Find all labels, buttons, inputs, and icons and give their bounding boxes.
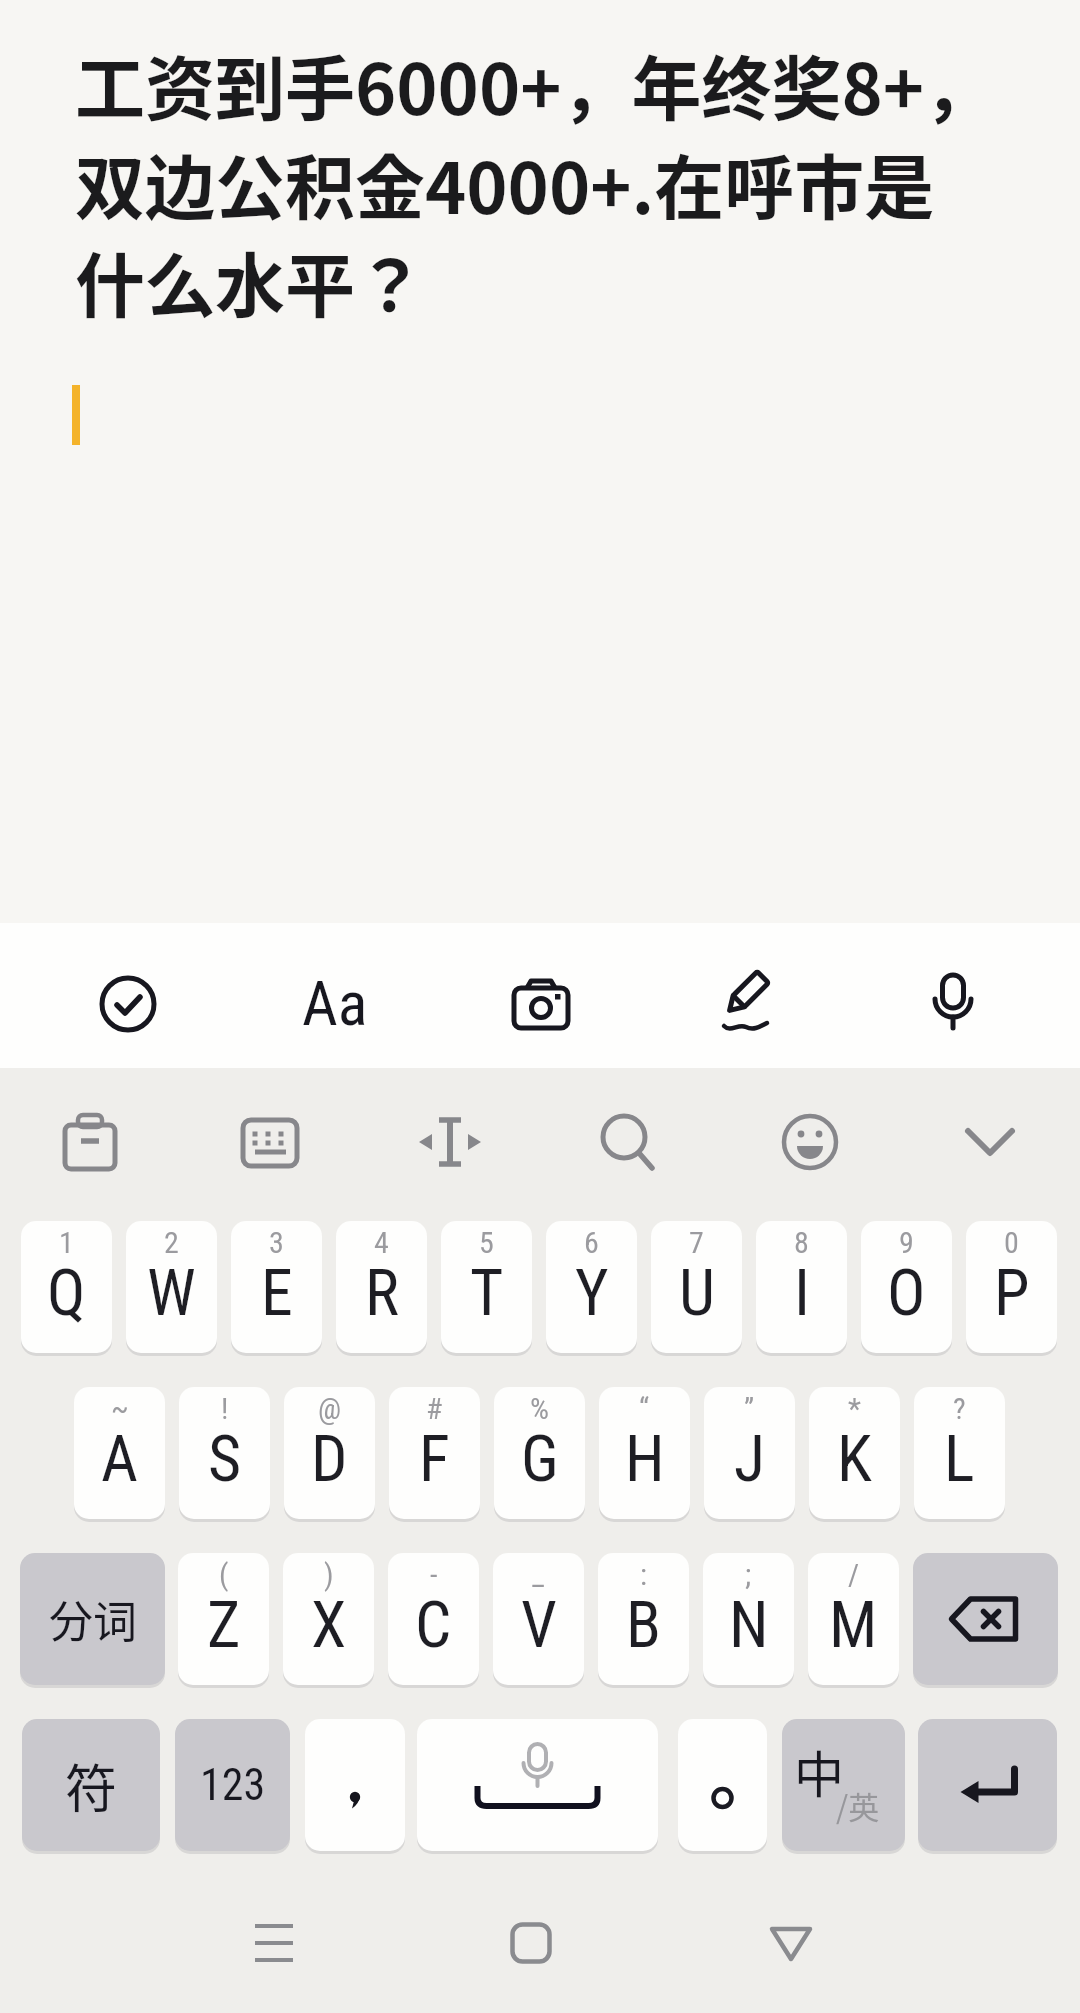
button[interactable]	[755, 1907, 827, 1979]
button[interactable]: 8	[756, 1221, 847, 1353]
staticText: 符	[65, 1748, 118, 1823]
button[interactable]: 4	[336, 1221, 427, 1353]
staticText: 1	[59, 1225, 74, 1260]
staticText: O	[887, 1256, 926, 1331]
button[interactable]: :	[598, 1553, 689, 1685]
staticText: Z	[207, 1588, 241, 1663]
staticText: V	[521, 1588, 557, 1663]
staticText: X	[311, 1588, 347, 1663]
staticText: ”	[744, 1391, 755, 1426]
staticText: “	[639, 1391, 650, 1426]
staticText: K	[837, 1422, 872, 1497]
button[interactable]: 符	[22, 1719, 160, 1851]
button[interactable]: ~	[74, 1387, 165, 1519]
button[interactable]: 3	[231, 1221, 322, 1353]
staticText: C	[415, 1588, 452, 1663]
staticText: /英	[836, 1783, 880, 1828]
staticText: 中	[794, 1735, 844, 1807]
staticText: 0	[1004, 1225, 1019, 1260]
staticText: #	[426, 1391, 443, 1426]
staticText: Aa	[302, 967, 368, 1040]
button[interactable]: %	[494, 1387, 585, 1519]
button[interactable]	[918, 1719, 1057, 1851]
staticText: 8	[794, 1225, 809, 1260]
staticText: S	[208, 1422, 242, 1497]
button[interactable]: 5	[441, 1221, 532, 1353]
staticText: %	[530, 1391, 549, 1426]
button[interactable]: 2	[126, 1221, 217, 1353]
button[interactable]	[644, 923, 850, 1068]
staticText: B	[626, 1588, 661, 1663]
staticText: N	[729, 1588, 769, 1663]
button[interactable]: *	[809, 1387, 900, 1519]
button[interactable]: ”	[704, 1387, 795, 1519]
staticText: Q	[47, 1256, 86, 1331]
staticText: /	[848, 1557, 860, 1592]
button[interactable]: ?	[914, 1387, 1005, 1519]
button[interactable]: 分词	[20, 1553, 165, 1685]
staticText: 4	[374, 1225, 389, 1260]
button[interactable]	[305, 1719, 405, 1851]
staticText: 3	[269, 1225, 284, 1260]
staticText: !	[221, 1391, 229, 1426]
button[interactable]	[774, 1106, 846, 1178]
button[interactable]	[678, 1719, 767, 1851]
staticText: I	[794, 1256, 810, 1331]
staticText: J	[734, 1422, 765, 1497]
button[interactable]: 1	[21, 1221, 112, 1353]
staticText: U	[679, 1256, 715, 1331]
staticText: Y	[575, 1256, 609, 1331]
button[interactable]: /	[808, 1553, 899, 1685]
button[interactable]: _	[493, 1553, 584, 1685]
button[interactable]: 123	[175, 1719, 290, 1851]
button[interactable]: (	[178, 1553, 269, 1685]
button[interactable]	[414, 1106, 486, 1178]
button[interactable]	[54, 1106, 126, 1178]
staticText: :	[640, 1557, 648, 1592]
button[interactable]: )	[283, 1553, 374, 1685]
staticText: *	[848, 1391, 861, 1426]
staticText: ;	[745, 1557, 752, 1592]
staticText: G	[521, 1422, 559, 1497]
button[interactable]	[238, 1907, 310, 1979]
staticText: P	[994, 1256, 1030, 1331]
button[interactable]	[438, 923, 644, 1068]
button[interactable]: 中	[782, 1719, 905, 1851]
staticText: 7	[689, 1225, 704, 1260]
button[interactable]: #	[389, 1387, 480, 1519]
button[interactable]	[495, 1907, 567, 1979]
button[interactable]: -	[388, 1553, 479, 1685]
button[interactable]	[850, 923, 1056, 1068]
staticText: @	[318, 1391, 342, 1426]
button[interactable]: Aa	[231, 923, 438, 1068]
button[interactable]: @	[284, 1387, 375, 1519]
button[interactable]	[594, 1106, 666, 1178]
button[interactable]: !	[179, 1387, 270, 1519]
staticText: )	[324, 1557, 334, 1592]
staticText: 9	[899, 1225, 914, 1260]
staticText: 123	[200, 1759, 266, 1811]
button[interactable]: 6	[546, 1221, 637, 1353]
staticText: ?	[953, 1391, 966, 1426]
button[interactable]: ;	[703, 1553, 794, 1685]
staticText: 工资到手6000+，年终奖8+， 双边公积金4000+.在呼市是 什么水平？	[75, 34, 995, 332]
staticText: 5	[479, 1225, 494, 1260]
button[interactable]	[913, 1553, 1058, 1685]
staticText: D	[311, 1422, 348, 1497]
staticText: 6	[584, 1225, 599, 1260]
button[interactable]	[954, 1106, 1026, 1178]
staticText: -	[430, 1557, 438, 1592]
staticText: M	[829, 1588, 878, 1663]
button[interactable]	[24, 923, 231, 1068]
button[interactable]	[417, 1719, 658, 1851]
button[interactable]: 7	[651, 1221, 742, 1353]
staticText: W	[147, 1256, 196, 1331]
button[interactable]: 9	[861, 1221, 952, 1353]
button[interactable]	[234, 1106, 306, 1178]
button[interactable]: “	[599, 1387, 690, 1519]
staticText: E	[261, 1256, 293, 1331]
staticText: A	[101, 1422, 138, 1497]
staticText: 分词	[49, 1587, 137, 1651]
button[interactable]: 0	[966, 1221, 1057, 1353]
staticText: L	[944, 1422, 975, 1497]
